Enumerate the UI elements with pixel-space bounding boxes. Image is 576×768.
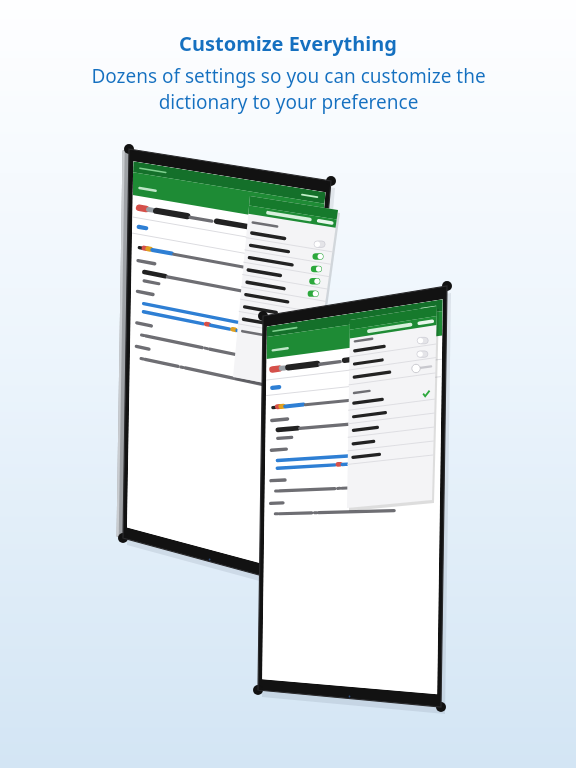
staticText: Customize Everything xyxy=(179,30,397,57)
button[interactable]: Dictionary app settings screenshots xyxy=(0,0,576,768)
staticText: Dozens of settings so you can customize … xyxy=(91,63,486,114)
